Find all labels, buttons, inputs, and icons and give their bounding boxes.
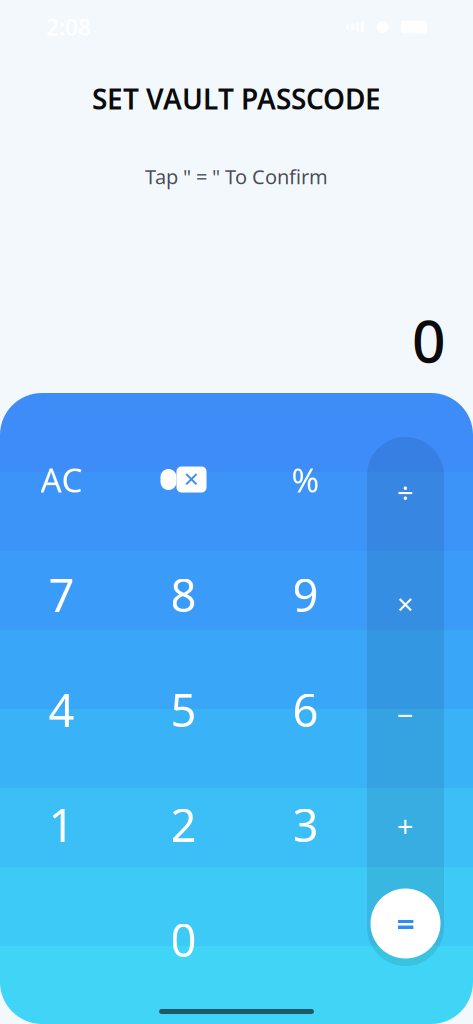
button[interactable]: 5: [122, 652, 244, 767]
staticText: −: [397, 695, 414, 734]
button[interactable]: Percent: [244, 422, 366, 537]
staticText: 8: [170, 564, 196, 625]
staticText: =: [396, 902, 414, 945]
staticText: 0: [412, 301, 446, 379]
button[interactable]: Divide: [367, 437, 444, 548]
button[interactable]: Multiply: [367, 548, 444, 659]
button[interactable]: Equals, confirm passcode: [367, 881, 444, 966]
button[interactable]: 1: [0, 767, 122, 882]
staticText: 2: [170, 794, 196, 855]
staticText: 3: [292, 794, 318, 855]
button[interactable]: Subtract: [367, 659, 444, 770]
staticText: 0: [170, 909, 196, 970]
button[interactable]: Add: [367, 770, 444, 881]
staticText: 6: [292, 679, 318, 740]
button[interactable]: 2: [122, 767, 244, 882]
staticText: 1: [48, 794, 74, 855]
staticText: AC: [40, 457, 82, 502]
button[interactable]: 0: [122, 882, 244, 997]
button[interactable]: Delete: [122, 422, 244, 537]
staticText: %: [291, 457, 319, 502]
button[interactable]: 8: [122, 537, 244, 652]
button[interactable]: 4: [0, 652, 122, 767]
staticText: ×: [397, 584, 414, 623]
staticText: ÷: [397, 473, 414, 512]
button[interactable]: 7: [0, 537, 122, 652]
staticText: 9: [292, 564, 318, 625]
button[interactable]: 3: [244, 767, 366, 882]
staticText: ✕: [183, 468, 200, 491]
staticText: 2:08: [46, 12, 91, 42]
button[interactable]: 6: [244, 652, 366, 767]
staticText: +: [397, 806, 414, 845]
button[interactable]: All clear: [0, 422, 122, 537]
staticText: 5: [170, 679, 196, 740]
staticText: SET VAULT PASSCODE: [92, 80, 381, 117]
button[interactable]: 9: [244, 537, 366, 652]
staticText: 4: [48, 679, 74, 740]
staticText: Tap " = " To Confirm: [145, 163, 328, 190]
staticText: 7: [48, 564, 74, 625]
